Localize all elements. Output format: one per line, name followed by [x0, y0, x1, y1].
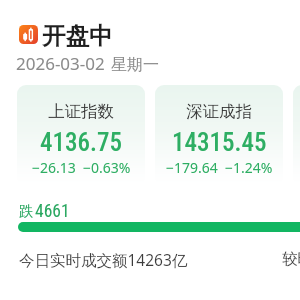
staticText: 深证成指	[186, 101, 252, 122]
staticText: 开盘中	[42, 21, 113, 51]
staticText: 跌	[19, 202, 34, 220]
staticText: −26.13	[32, 158, 76, 177]
staticText: −0.63%	[83, 158, 131, 177]
other: Market status	[19, 25, 38, 44]
button[interactable]: 深证成指	[155, 85, 283, 185]
button[interactable]: 上证指数	[17, 85, 145, 185]
staticText: 4661	[35, 201, 70, 222]
button[interactable]: 较昨日增加	[282, 244, 300, 270]
staticText: −1.24%	[225, 158, 273, 177]
staticText: −179.64	[166, 158, 218, 177]
button[interactable]: 今日实时成交额14263亿	[14, 244, 194, 270]
staticText: 4136.75	[40, 128, 122, 157]
staticText: 上证指数	[48, 101, 114, 122]
button[interactable]: 创业板指	[293, 85, 300, 185]
staticText: 星期一	[111, 55, 159, 75]
staticText: 较昨日增加	[282, 249, 300, 269]
staticText: 14315.45	[172, 128, 267, 157]
button[interactable]: 跌	[14, 196, 84, 222]
button[interactable]: Market status	[14, 18, 124, 50]
staticText: 今日实时成交额14263亿	[19, 249, 188, 270]
staticText: 2026-03-02	[16, 52, 105, 75]
